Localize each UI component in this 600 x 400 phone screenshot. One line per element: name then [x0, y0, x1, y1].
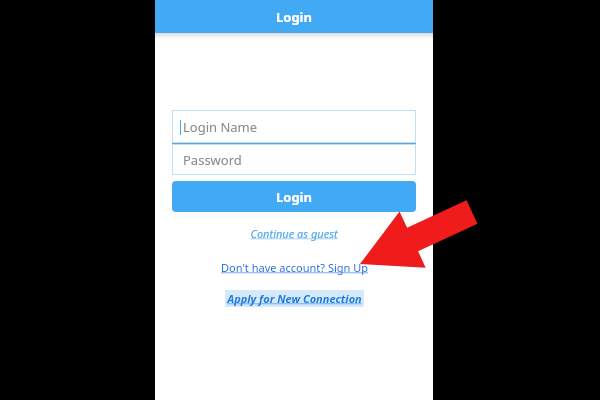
button[interactable]: Apply for New Connection	[225, 290, 364, 307]
button[interactable]: Password	[172, 144, 416, 175]
button[interactable]: Login Name	[172, 110, 416, 143]
staticText: Login Name	[183, 118, 258, 136]
button[interactable]: Continue as guest	[246, 224, 342, 243]
staticText: Apply for New Connection	[227, 291, 362, 306]
staticText: Password	[183, 151, 242, 169]
staticText: Login	[276, 188, 312, 206]
staticText: Login	[276, 8, 312, 26]
button[interactable]: Don't have account? Sign Up	[217, 258, 372, 277]
button[interactable]: Login	[172, 181, 416, 212]
